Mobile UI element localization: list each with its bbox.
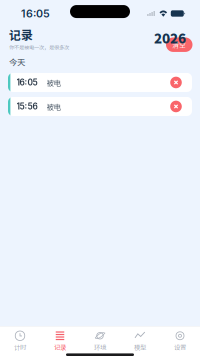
staticText: 清空 (172, 40, 186, 50)
button[interactable]: 环境 (80, 330, 120, 351)
staticText: 16:05 (21, 7, 50, 20)
staticText: 模型 (134, 342, 146, 352)
staticText: 你不是被电一次，是很多次 (9, 43, 69, 51)
staticText: 设置 (174, 342, 186, 352)
staticText: 计时 (14, 342, 26, 352)
button[interactable]: 计时 (0, 330, 40, 351)
staticText: 2026 (154, 28, 186, 47)
staticText: 15:56 (17, 101, 38, 111)
staticText: 16:05 (17, 77, 38, 87)
button[interactable]: 15:56 (0, 97, 200, 116)
staticText: 记录 (9, 26, 33, 43)
button[interactable]: Delete record (166, 73, 192, 92)
button[interactable]: Delete record (166, 97, 192, 116)
staticText: 今天 (9, 56, 25, 68)
staticText: 环境 (94, 342, 106, 352)
staticText: 被电 (47, 77, 61, 88)
button[interactable]: 设置 (160, 330, 200, 351)
button[interactable]: 清空 (166, 37, 192, 52)
button[interactable]: 记录 (40, 330, 80, 351)
staticText: 记录 (54, 342, 66, 352)
button[interactable]: 16:05 (0, 73, 200, 92)
staticText: 被电 (47, 101, 61, 112)
button[interactable]: 模型 (120, 330, 160, 351)
